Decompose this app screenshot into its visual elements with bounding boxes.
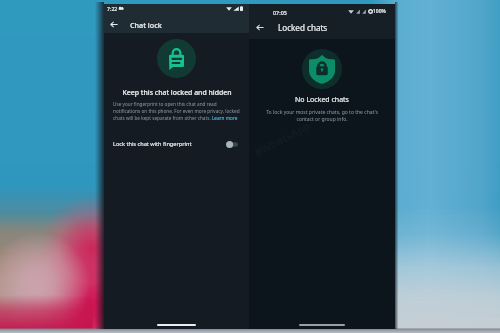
staticText: Lock this chat with fingerprint — [113, 140, 192, 148]
staticText: 7:22 — [107, 5, 118, 12]
staticText: 07:05 — [273, 9, 287, 16]
button[interactable]: Back — [107, 17, 121, 31]
staticText: Keep this chat locked and hidden — [122, 88, 232, 97]
staticText: To lock your most private chats, go to t… — [260, 109, 384, 123]
staticText: Chat lock — [130, 20, 162, 30]
staticText: Use your fingerprint to open this chat a… — [113, 101, 244, 122]
button[interactable]: Back — [253, 20, 267, 34]
staticText: Locked chats — [278, 22, 328, 33]
button[interactable]: Lock this chat with fingerprint — [104, 136, 249, 152]
staticText: No Locked chats — [295, 95, 349, 105]
staticText: BWhatsApp — [252, 118, 313, 159]
staticText: 100% — [373, 8, 386, 15]
